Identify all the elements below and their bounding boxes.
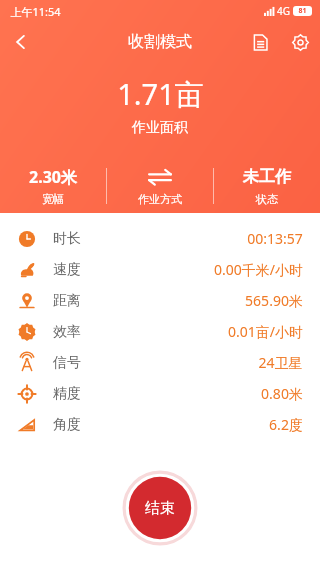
staticText: 0.01亩/小时 xyxy=(228,322,303,341)
button[interactable]: 结束 xyxy=(121,469,199,547)
button[interactable]: 未工作 xyxy=(214,166,320,206)
button[interactable]: 信号 xyxy=(0,347,320,378)
button[interactable]: 角度 xyxy=(0,409,320,440)
staticText: 0.80米 xyxy=(261,384,303,403)
button[interactable]: 2.30米 xyxy=(0,166,106,206)
staticText: 速度 xyxy=(53,261,81,279)
staticText: 作业面积 xyxy=(132,119,188,137)
button[interactable]: Back xyxy=(0,22,42,62)
staticText: 作业方式 xyxy=(138,192,182,206)
staticText: 效率 xyxy=(53,323,81,341)
staticText: 00:13:57 xyxy=(247,229,303,248)
staticText: 宽幅 xyxy=(42,192,64,206)
staticText: 565.90米 xyxy=(245,291,303,310)
staticText: 收割模式 xyxy=(128,32,192,52)
staticText: 6.2度 xyxy=(269,415,303,434)
staticText: 时长 xyxy=(53,230,81,248)
button[interactable]: Records xyxy=(240,22,280,62)
staticText: 24卫星 xyxy=(258,353,303,372)
staticText: 信号 xyxy=(53,354,81,372)
button[interactable]: 速度 xyxy=(0,254,320,285)
button[interactable]: 时长 xyxy=(0,223,320,254)
button[interactable]: Settings xyxy=(280,22,320,62)
staticText: 精度 xyxy=(53,385,81,403)
button[interactable]: 精度 xyxy=(0,378,320,409)
staticText: 未工作 xyxy=(243,167,291,187)
staticText: 0.00千米/小时 xyxy=(214,260,303,279)
staticText: 上午11:54 xyxy=(10,4,61,19)
button[interactable]: 效率 xyxy=(0,316,320,347)
staticText: 2.30米 xyxy=(29,166,77,188)
staticText: 81 xyxy=(298,6,307,16)
staticText: 距离 xyxy=(53,292,81,310)
staticText: 状态 xyxy=(256,192,278,206)
staticText: 结束 xyxy=(145,499,175,518)
staticText: 1.71亩 xyxy=(117,74,204,114)
button[interactable]: 作业方式 xyxy=(107,166,213,206)
staticText: 4G xyxy=(277,4,290,18)
button[interactable]: 距离 xyxy=(0,285,320,316)
staticText: 角度 xyxy=(53,416,81,434)
